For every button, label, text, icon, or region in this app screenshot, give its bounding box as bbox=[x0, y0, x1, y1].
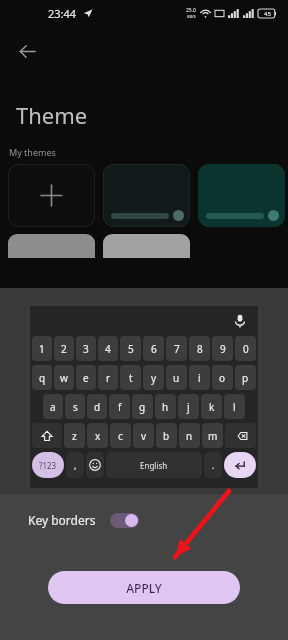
staticText: APPLY bbox=[126, 580, 162, 596]
button[interactable]: b bbox=[156, 423, 177, 448]
button[interactable]: English bbox=[106, 452, 202, 478]
button[interactable]: APPLY bbox=[48, 571, 240, 604]
button[interactable]: Back bbox=[10, 34, 44, 68]
staticText: n bbox=[186, 429, 193, 443]
button[interactable]: u bbox=[166, 365, 187, 390]
button[interactable]: f bbox=[109, 394, 130, 419]
button[interactable]: i bbox=[189, 365, 210, 390]
button[interactable]: g bbox=[132, 394, 153, 419]
button[interactable]: 4 bbox=[98, 336, 118, 361]
staticText: d bbox=[94, 400, 101, 414]
button[interactable]: n bbox=[179, 423, 200, 448]
button[interactable]: 3 bbox=[76, 336, 96, 361]
staticText: k bbox=[209, 400, 215, 414]
staticText: 9 bbox=[220, 342, 226, 356]
button[interactable]: . bbox=[204, 452, 222, 478]
staticText: a bbox=[50, 400, 56, 414]
staticText: h bbox=[162, 400, 169, 414]
button[interactable]: Theme preview bbox=[103, 164, 190, 227]
staticText: m bbox=[208, 429, 218, 443]
staticText: p bbox=[242, 371, 249, 385]
button[interactable]: 5 bbox=[120, 336, 141, 361]
button[interactable]: w bbox=[54, 365, 74, 390]
button[interactable]: s bbox=[65, 394, 85, 419]
button[interactable]: Voice input bbox=[230, 311, 250, 331]
button[interactable]: Theme preview bbox=[198, 164, 285, 227]
button[interactable] bbox=[103, 234, 190, 258]
staticText: j bbox=[187, 400, 190, 414]
button[interactable]: p bbox=[235, 365, 256, 390]
staticText: z bbox=[72, 429, 77, 443]
button[interactable]: l bbox=[224, 394, 245, 419]
button[interactable]: Emoji bbox=[86, 452, 104, 478]
staticText: 25.0 bbox=[186, 7, 196, 14]
staticText: q bbox=[39, 371, 46, 385]
button[interactable]: 9 bbox=[212, 336, 233, 361]
staticText: y bbox=[151, 371, 157, 385]
staticText: Key borders bbox=[28, 512, 96, 528]
staticText: 8 bbox=[197, 342, 203, 356]
button[interactable]: Key borders bbox=[0, 494, 288, 546]
staticText: i bbox=[198, 371, 201, 385]
staticText: 7 bbox=[174, 342, 180, 356]
button[interactable]: Enter bbox=[224, 452, 256, 478]
button[interactable]: Shift bbox=[32, 423, 62, 448]
staticText: 3 bbox=[83, 342, 89, 356]
button[interactable] bbox=[8, 234, 95, 258]
staticText: r bbox=[106, 371, 111, 385]
staticText: 6 bbox=[151, 342, 157, 356]
button[interactable]: 1 bbox=[32, 336, 52, 361]
staticText: x bbox=[95, 429, 101, 443]
staticText: c bbox=[118, 429, 123, 443]
staticText: v bbox=[141, 429, 147, 443]
staticText: 23:44 bbox=[48, 6, 77, 21]
staticText: g bbox=[139, 400, 146, 414]
button[interactable]: 2 bbox=[54, 336, 74, 361]
staticText: s bbox=[73, 400, 78, 414]
button[interactable]: o bbox=[212, 365, 233, 390]
staticText: , bbox=[74, 459, 77, 471]
staticText: f bbox=[118, 400, 122, 414]
button[interactable]: 6 bbox=[143, 336, 164, 361]
button[interactable]: , bbox=[66, 452, 84, 478]
button[interactable]: v bbox=[133, 423, 154, 448]
staticText: t bbox=[129, 371, 133, 385]
button[interactable]: m bbox=[202, 423, 223, 448]
button[interactable]: Backspace bbox=[225, 423, 256, 448]
button[interactable]: 8 bbox=[189, 336, 210, 361]
button[interactable]: k bbox=[201, 394, 222, 419]
staticText: My themes bbox=[9, 146, 56, 158]
button[interactable]: q bbox=[32, 365, 52, 390]
staticText: l bbox=[233, 400, 236, 414]
staticText: u bbox=[173, 371, 180, 385]
button[interactable]: r bbox=[98, 365, 118, 390]
staticText: e bbox=[83, 371, 89, 385]
staticText: 1 bbox=[39, 342, 45, 356]
staticText: 4 bbox=[105, 342, 111, 356]
button[interactable]: z bbox=[64, 423, 85, 448]
button[interactable]: y bbox=[143, 365, 164, 390]
staticText: 5 bbox=[128, 342, 134, 356]
button[interactable]: a bbox=[43, 394, 63, 419]
staticText: . bbox=[212, 459, 215, 471]
staticText: 45 bbox=[264, 10, 271, 18]
button[interactable]: Add theme bbox=[8, 164, 95, 227]
button[interactable]: d bbox=[87, 394, 107, 419]
button[interactable]: t bbox=[120, 365, 141, 390]
button[interactable]: h bbox=[155, 394, 176, 419]
button[interactable]: 0 bbox=[235, 336, 256, 361]
button[interactable]: c bbox=[110, 423, 131, 448]
staticText: o bbox=[219, 371, 226, 385]
staticText: Theme bbox=[16, 100, 88, 130]
button[interactable]: x bbox=[87, 423, 108, 448]
staticText: 0 bbox=[243, 342, 249, 356]
button[interactable]: e bbox=[76, 365, 96, 390]
button[interactable]: 7 bbox=[166, 336, 187, 361]
staticText: ?123 bbox=[39, 460, 57, 471]
staticText: English bbox=[140, 460, 168, 471]
staticText: 2 bbox=[61, 342, 67, 356]
button[interactable]: ?123 bbox=[32, 452, 64, 478]
staticText: KB/S bbox=[187, 14, 196, 19]
button[interactable]: j bbox=[178, 394, 199, 419]
staticText: w bbox=[60, 371, 68, 385]
